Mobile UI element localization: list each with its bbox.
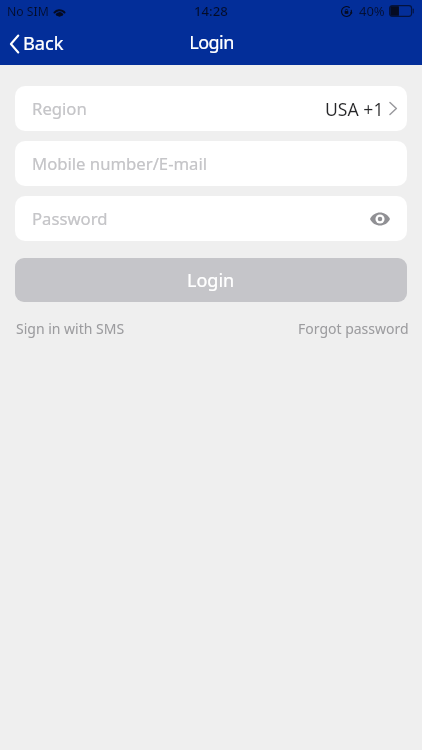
button[interactable]: Login bbox=[15, 258, 407, 302]
button[interactable]: Password bbox=[15, 196, 407, 241]
button[interactable]: Back bbox=[0, 24, 74, 63]
staticText: Region bbox=[32, 97, 87, 120]
staticText: Login bbox=[189, 30, 234, 55]
staticText: Forgot password bbox=[298, 319, 409, 338]
staticText: 40% bbox=[359, 2, 385, 20]
button[interactable]: Show password bbox=[369, 209, 391, 229]
button[interactable]: Mobile number/E-mail bbox=[15, 141, 407, 186]
button[interactable]: Region bbox=[15, 86, 407, 131]
staticText: Password bbox=[32, 207, 108, 230]
button[interactable]: Forgot password bbox=[293, 314, 414, 343]
staticText: Back bbox=[23, 31, 64, 56]
staticText: 14:28 bbox=[194, 2, 228, 20]
staticText: USA +1 bbox=[325, 97, 384, 121]
staticText: Login bbox=[187, 268, 235, 293]
staticText: Sign in with SMS bbox=[16, 319, 125, 338]
button[interactable]: Sign in with SMS bbox=[11, 314, 130, 343]
staticText: No SIM bbox=[7, 3, 49, 20]
staticText: Mobile number/E-mail bbox=[32, 152, 208, 175]
